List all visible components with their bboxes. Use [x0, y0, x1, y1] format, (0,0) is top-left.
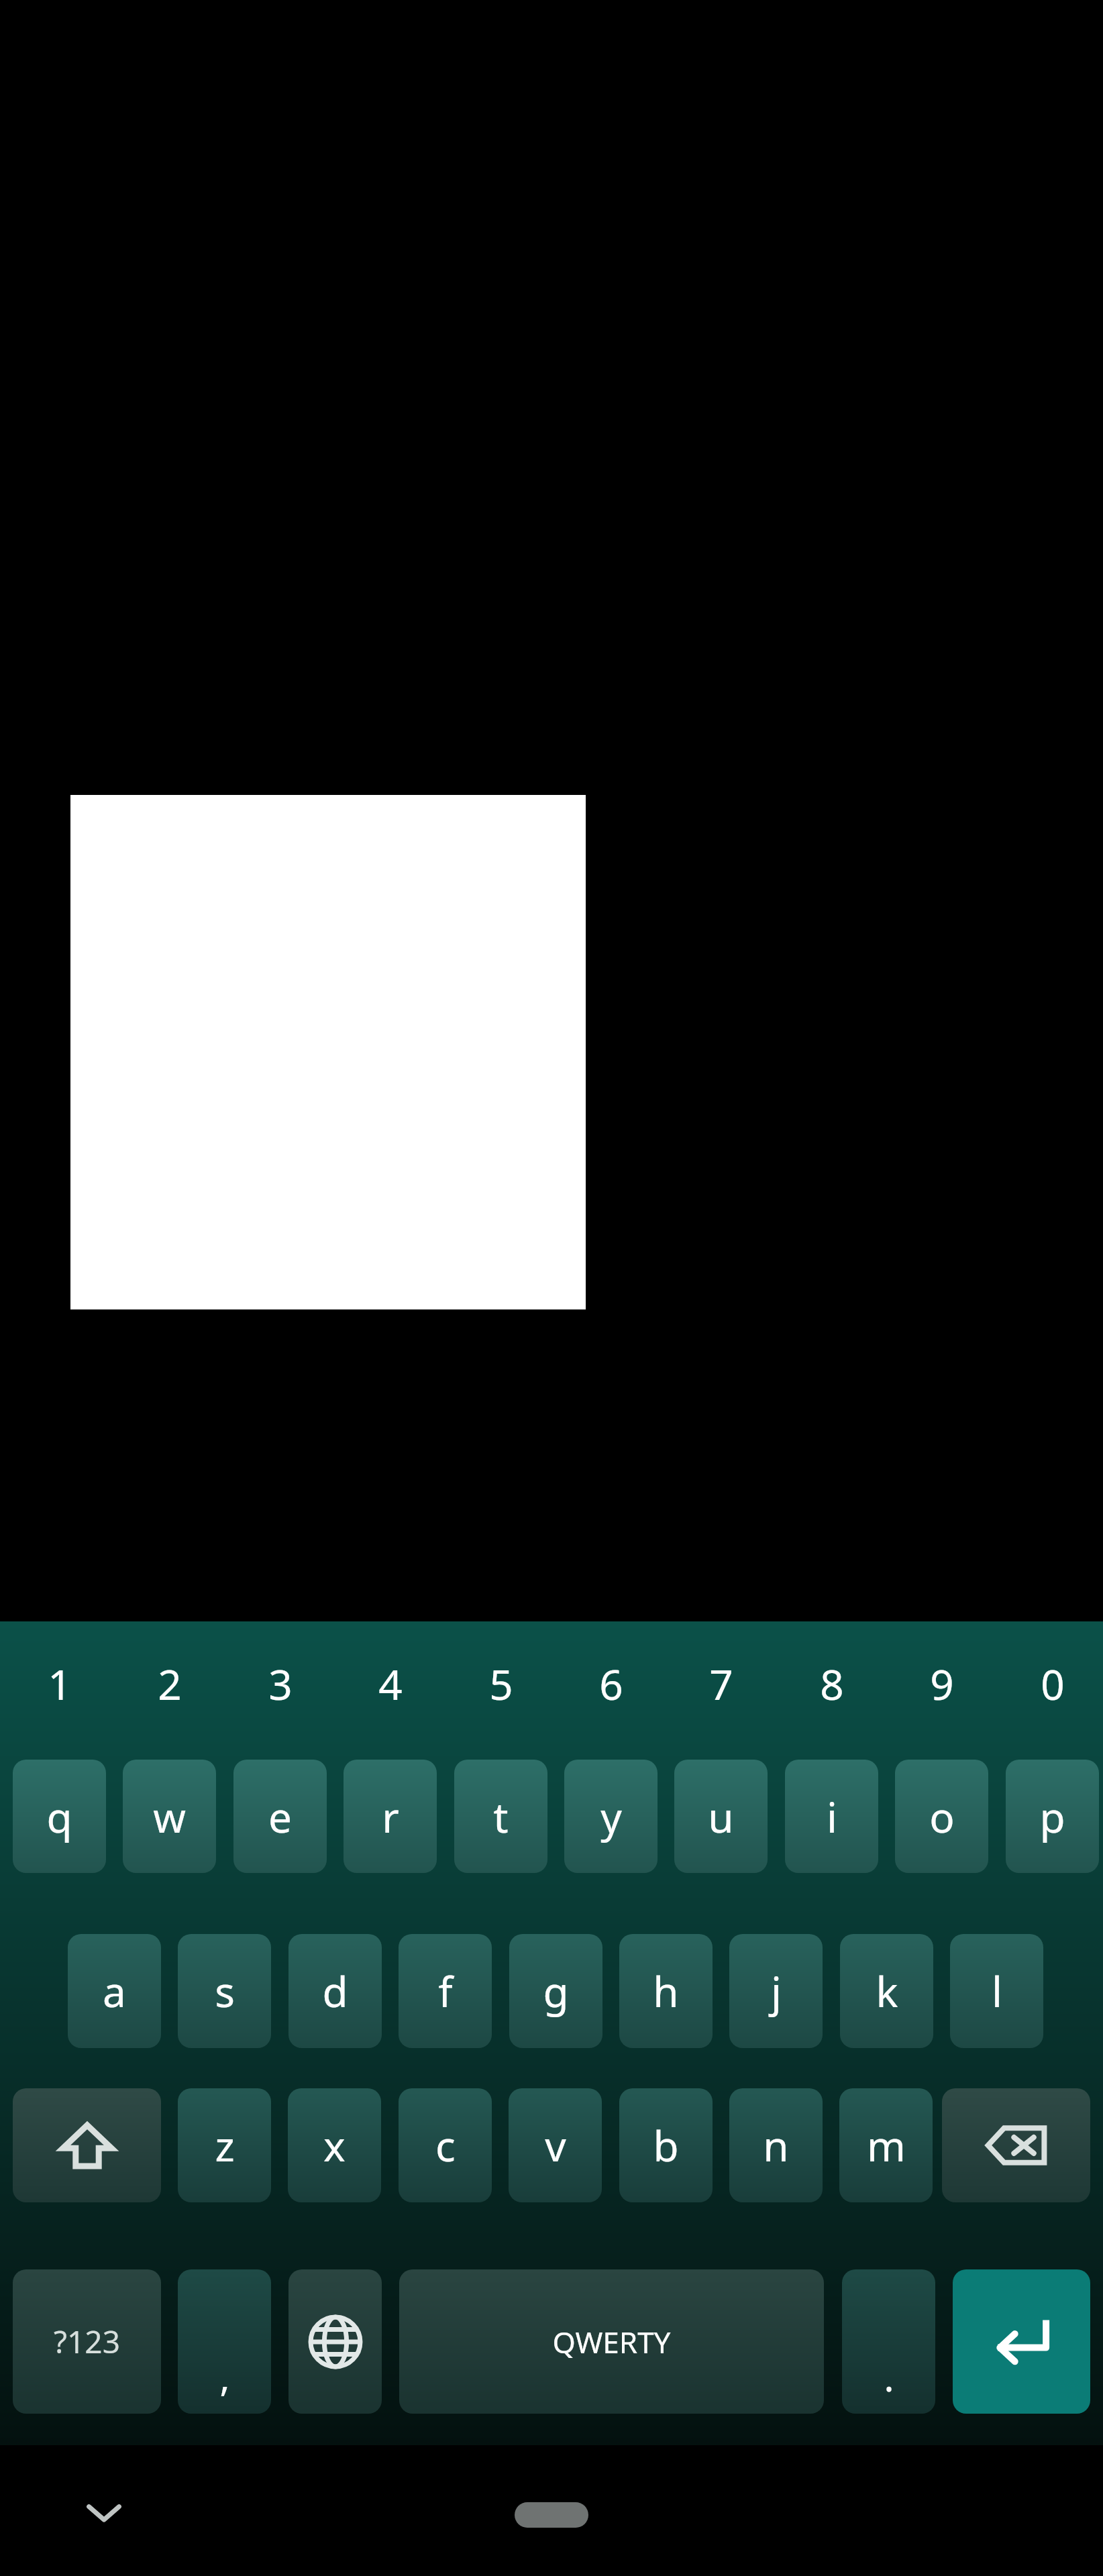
button[interactable]: i — [785, 1760, 878, 1873]
button[interactable]: u — [674, 1760, 768, 1873]
staticText: t — [493, 1788, 509, 1845]
button[interactable]: 1 — [13, 1630, 106, 1737]
staticText: s — [215, 1963, 235, 2019]
staticText: v — [545, 2117, 566, 2173]
staticText: . — [884, 2351, 894, 2402]
staticText: l — [992, 1963, 1002, 2019]
button[interactable] — [70, 795, 586, 1309]
staticText: ?123 — [54, 2320, 120, 2363]
staticText: g — [543, 1963, 569, 2019]
staticText: 8 — [820, 1656, 844, 1712]
button[interactable]: p — [1006, 1760, 1099, 1873]
button[interactable]: 7 — [674, 1630, 768, 1737]
staticText: 9 — [930, 1656, 954, 1712]
staticText: z — [215, 2117, 235, 2173]
staticText: m — [867, 2117, 906, 2173]
staticText: u — [708, 1788, 734, 1845]
button[interactable]: q — [13, 1760, 106, 1873]
staticText: b — [653, 2117, 679, 2173]
button[interactable]: Enter — [953, 2269, 1090, 2414]
button[interactable]: r — [344, 1760, 437, 1873]
button[interactable]: 0 — [1006, 1630, 1099, 1737]
button[interactable]: m — [839, 2088, 933, 2202]
button[interactable]: z — [178, 2088, 271, 2202]
staticText: 2 — [158, 1656, 182, 1712]
staticText: h — [653, 1963, 679, 2019]
button[interactable]: g — [509, 1934, 602, 2048]
button[interactable]: f — [399, 1934, 492, 2048]
button[interactable]: 2 — [123, 1630, 216, 1737]
button[interactable]: a — [68, 1934, 161, 2048]
button[interactable]: Change keyboard language — [288, 2269, 382, 2414]
button[interactable]: s — [178, 1934, 271, 2048]
staticText: , — [219, 2351, 230, 2402]
button[interactable]: b — [619, 2088, 713, 2202]
staticText: c — [435, 2117, 456, 2173]
button[interactable]: x — [288, 2088, 381, 2202]
button[interactable]: 9 — [895, 1630, 988, 1737]
button[interactable]: y — [564, 1760, 658, 1873]
staticText: d — [322, 1963, 348, 2019]
button[interactable]: c — [399, 2088, 492, 2202]
staticText: o — [929, 1788, 955, 1845]
button[interactable]: t — [454, 1760, 547, 1873]
staticText: 1 — [48, 1656, 72, 1712]
button[interactable]: 5 — [454, 1630, 547, 1737]
staticText: 0 — [1041, 1656, 1065, 1712]
staticText: j — [771, 1963, 782, 2019]
staticText: e — [268, 1788, 292, 1845]
button[interactable]: w — [123, 1760, 216, 1873]
staticText: QWERTY — [552, 2322, 671, 2362]
button[interactable]: ?123 — [13, 2269, 161, 2414]
staticText: r — [382, 1788, 399, 1845]
button[interactable]: o — [895, 1760, 988, 1873]
button[interactable]: . — [842, 2269, 935, 2414]
button[interactable]: v — [509, 2088, 602, 2202]
button[interactable]: l — [950, 1934, 1043, 2048]
button[interactable]: Shift — [13, 2088, 161, 2202]
staticText: x — [323, 2117, 346, 2173]
staticText: 5 — [489, 1656, 513, 1712]
button[interactable]: Home — [515, 2502, 588, 2528]
button[interactable]: 6 — [564, 1630, 658, 1737]
button[interactable]: k — [840, 1934, 933, 2048]
staticText: i — [827, 1788, 837, 1845]
staticText: 6 — [599, 1656, 623, 1712]
staticText: y — [600, 1788, 622, 1845]
button[interactable]: j — [729, 1934, 823, 2048]
staticText: k — [876, 1963, 898, 2019]
button[interactable]: QWERTY — [399, 2269, 824, 2414]
button[interactable]: Backspace — [942, 2088, 1090, 2202]
button[interactable]: e — [233, 1760, 327, 1873]
staticText: q — [46, 1788, 72, 1845]
staticText: w — [153, 1788, 186, 1845]
staticText: a — [103, 1963, 126, 2019]
button[interactable]: h — [619, 1934, 713, 2048]
button[interactable]: n — [729, 2088, 823, 2202]
button[interactable]: , — [178, 2269, 271, 2414]
button[interactable]: d — [288, 1934, 382, 2048]
button[interactable]: 8 — [785, 1630, 878, 1737]
staticText: 7 — [709, 1656, 733, 1712]
button[interactable]: Hide keyboard — [57, 2465, 151, 2559]
staticText: 3 — [268, 1656, 293, 1712]
staticText: 4 — [378, 1656, 403, 1712]
staticText: p — [1039, 1788, 1065, 1845]
staticText: f — [438, 1963, 453, 2019]
staticText: n — [763, 2117, 789, 2173]
button[interactable]: 4 — [344, 1630, 437, 1737]
button[interactable]: 3 — [233, 1630, 327, 1737]
